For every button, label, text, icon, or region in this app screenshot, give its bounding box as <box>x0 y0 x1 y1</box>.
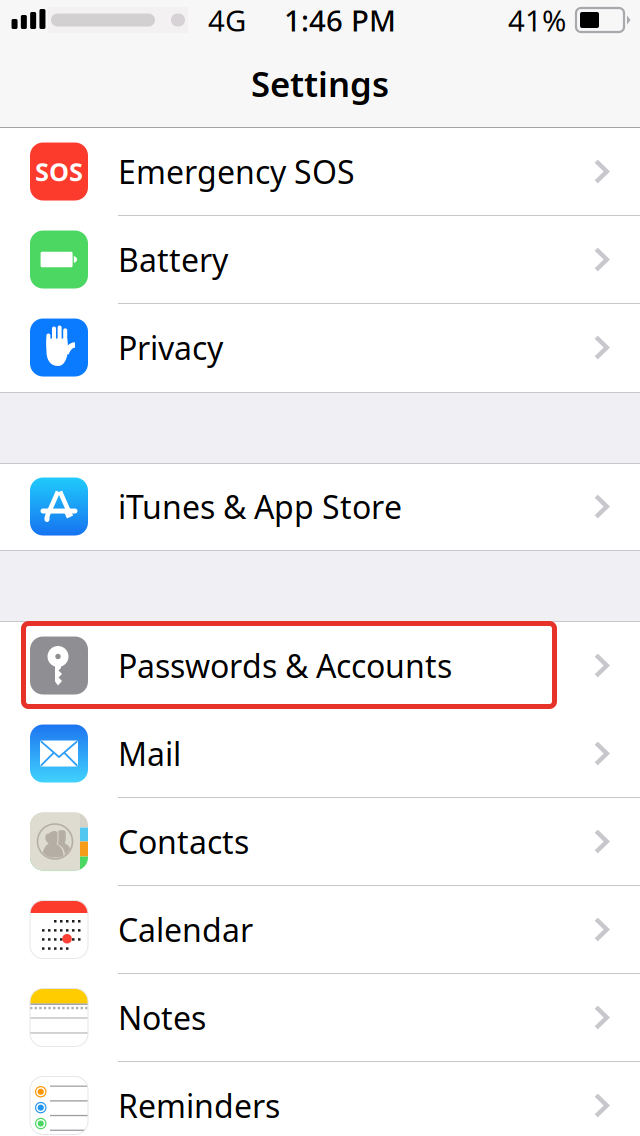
staticText: Settings <box>251 60 389 106</box>
button[interactable]: iTunes & App Store <box>0 464 640 550</box>
staticText: Emergency SOS <box>118 150 355 193</box>
staticText: Notes <box>118 996 206 1039</box>
button[interactable]: Mail <box>0 710 640 798</box>
staticText: Calendar <box>118 908 253 951</box>
staticText: 1:46 PM <box>284 0 396 39</box>
staticText: 4G <box>208 0 246 39</box>
button[interactable]: Privacy <box>0 304 640 392</box>
staticText: Battery <box>118 238 228 281</box>
staticText: 41% <box>508 0 566 39</box>
staticText: Passwords & Accounts <box>118 644 452 687</box>
button[interactable]: Reminders <box>0 1062 640 1136</box>
staticText: Reminders <box>118 1084 280 1127</box>
button[interactable]: Calendar <box>0 886 640 974</box>
button[interactable]: Battery <box>0 216 640 304</box>
button[interactable]: SOS <box>0 128 640 216</box>
staticText: SOS <box>35 155 83 188</box>
staticText: Contacts <box>118 820 249 863</box>
staticText: Privacy <box>118 326 223 369</box>
staticText: Mail <box>118 732 181 775</box>
button[interactable]: Contacts <box>0 798 640 886</box>
staticText: iTunes & App Store <box>118 485 402 528</box>
button[interactable]: Passwords & Accounts <box>0 622 640 710</box>
button[interactable]: Notes <box>0 974 640 1062</box>
